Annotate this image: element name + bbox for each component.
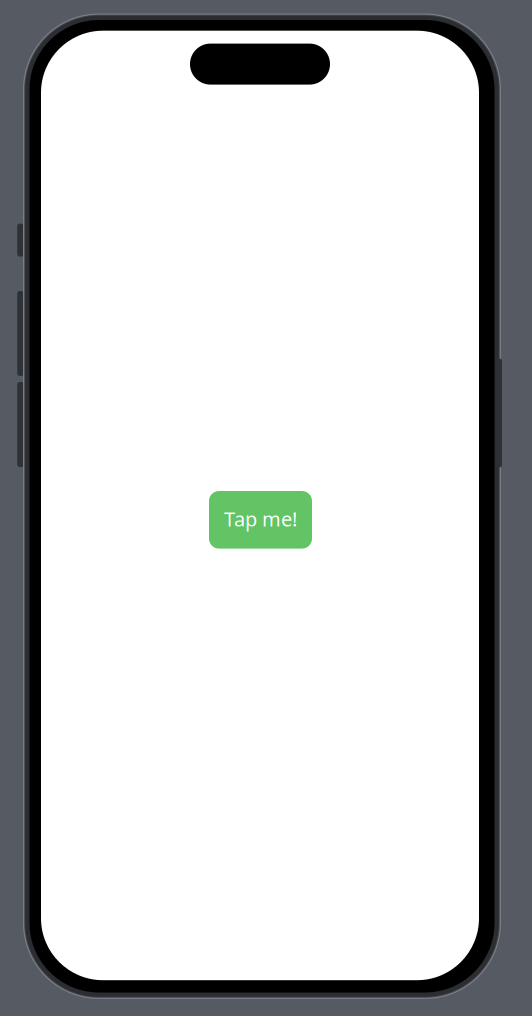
button[interactable]: Tap me! — [209, 491, 312, 549]
staticText: Tap me! — [224, 505, 297, 532]
